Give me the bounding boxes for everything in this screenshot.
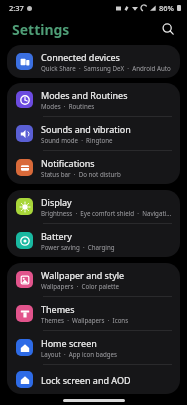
- button[interactable]: Connected devices: [7, 45, 180, 78]
- button[interactable]: Display: [7, 190, 180, 223]
- button[interactable]: Notifications: [7, 151, 180, 184]
- button[interactable]: Themes: [7, 297, 180, 330]
- staticText: Sound mode · Ringtone: [41, 136, 113, 144]
- button[interactable]: Search settings: [157, 18, 179, 40]
- staticText: Brightness · Eye comfort shield · Naviga…: [41, 209, 172, 217]
- button[interactable]: Sounds and vibration: [7, 117, 180, 150]
- staticText: Wallpapers · Color palette: [41, 282, 119, 290]
- staticText: Battery: [41, 230, 72, 242]
- staticText: Settings: [12, 20, 70, 39]
- staticText: Notifications: [41, 157, 95, 169]
- button[interactable]: Modes and Routines: [7, 83, 180, 116]
- staticText: Layout · App icon badges: [41, 350, 118, 358]
- staticText: Quick Share · Samsung DeX · Android Auto: [41, 64, 171, 72]
- staticText: Home screen: [41, 337, 97, 349]
- button[interactable]: Wallpaper and style: [7, 263, 180, 296]
- staticText: Connected devices: [41, 51, 120, 63]
- staticText: Sounds and vibration: [41, 123, 131, 135]
- staticText: 2:37: [9, 3, 24, 13]
- staticText: Power saving · Charging: [41, 243, 115, 251]
- staticText: Wallpaper and style: [41, 269, 125, 281]
- staticText: Lock screen and AOD: [41, 374, 131, 386]
- staticText: 86%: [159, 3, 174, 13]
- staticText: Themes · Wallpapers · Icons: [41, 316, 129, 324]
- staticText: Display: [41, 196, 72, 208]
- staticText: Status bar · Do not disturb: [41, 170, 121, 178]
- button[interactable]: Lock screen and AOD: [7, 365, 180, 394]
- staticText: Themes: [41, 303, 75, 315]
- button[interactable]: Home screen: [7, 331, 180, 364]
- staticText: Modes · Routines: [41, 102, 95, 110]
- button[interactable]: Battery: [7, 224, 180, 257]
- staticText: Modes and Routines: [41, 89, 128, 101]
